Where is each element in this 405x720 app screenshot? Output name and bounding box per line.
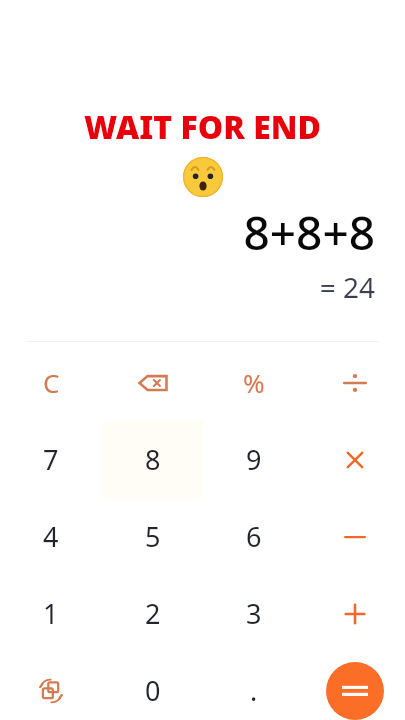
staticText: C bbox=[43, 365, 60, 400]
button[interactable]: 1 bbox=[0, 575, 102, 652]
staticText: 5 bbox=[145, 518, 161, 555]
button[interactable]: Equals bbox=[326, 662, 384, 720]
staticText: 6 bbox=[246, 518, 262, 555]
staticText: 9 bbox=[246, 441, 262, 478]
button[interactable]: Minus bbox=[304, 498, 405, 575]
button[interactable]: 8 bbox=[102, 421, 203, 498]
button[interactable]: 9 bbox=[203, 421, 304, 498]
button[interactable]: . bbox=[203, 652, 304, 720]
button[interactable]: 4 bbox=[0, 498, 102, 575]
staticText: WAIT FOR END bbox=[0, 105, 405, 149]
button[interactable]: 5 bbox=[102, 498, 203, 575]
button[interactable]: C bbox=[0, 344, 102, 421]
button[interactable]: 3 bbox=[203, 575, 304, 652]
staticText: = 24 bbox=[0, 268, 375, 306]
staticText: 2 bbox=[145, 595, 161, 632]
button[interactable]: 7 bbox=[0, 421, 102, 498]
button[interactable]: Multiply bbox=[304, 421, 405, 498]
button[interactable]: Unit converter bbox=[0, 652, 102, 720]
staticText: % bbox=[243, 365, 265, 400]
button[interactable]: 2 bbox=[102, 575, 203, 652]
button[interactable]: Divide bbox=[304, 344, 405, 421]
staticText: 1 bbox=[43, 595, 59, 632]
staticText: 7 bbox=[43, 441, 59, 478]
staticText: 4 bbox=[43, 518, 59, 555]
staticText: 3 bbox=[246, 595, 262, 632]
button[interactable]: 6 bbox=[203, 498, 304, 575]
staticText: 8+8+8 bbox=[0, 201, 375, 264]
button[interactable]: Plus bbox=[304, 575, 405, 652]
button[interactable]: 0 bbox=[102, 652, 203, 720]
staticText: . bbox=[250, 672, 258, 709]
staticText: 0 bbox=[145, 672, 161, 709]
staticText: 8 bbox=[145, 441, 161, 478]
button[interactable]: % bbox=[203, 344, 304, 421]
button[interactable]: Backspace bbox=[102, 344, 203, 421]
